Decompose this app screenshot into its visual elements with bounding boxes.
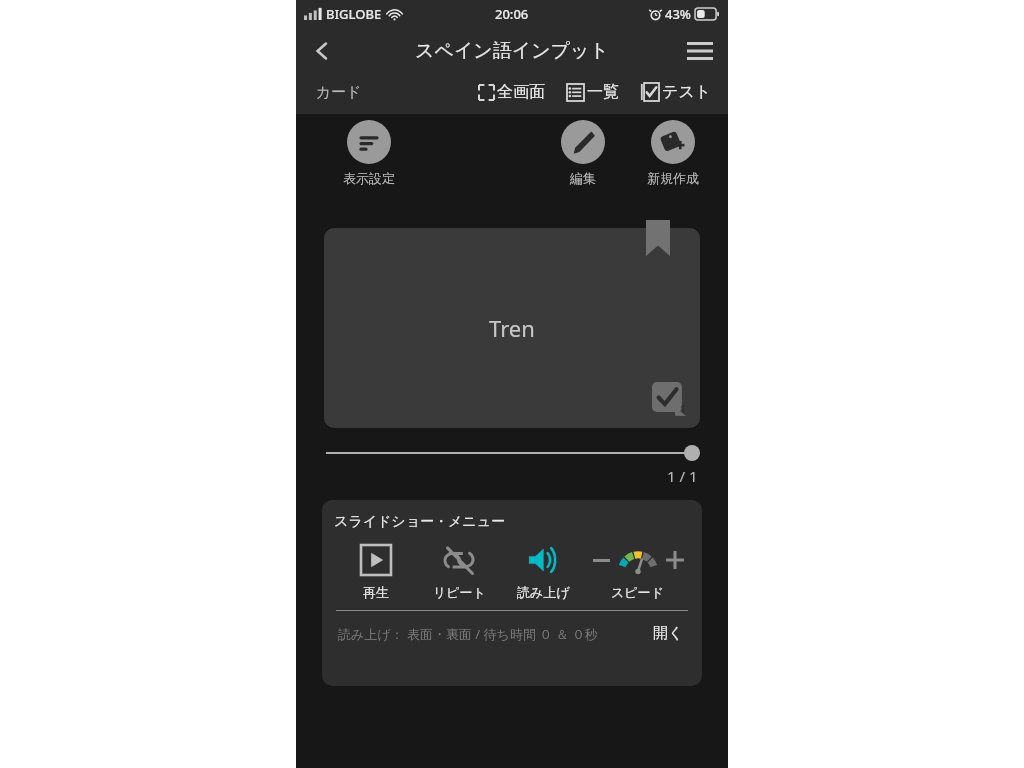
staticText: 読み上げ： 表面・裏面 / 待ち時間 ０ ＆ ０秒 <box>338 625 599 643</box>
button[interactable]: 一覧 <box>565 78 621 106</box>
staticText: Tren <box>489 313 535 343</box>
button[interactable]: 読み上げ <box>501 541 585 600</box>
button[interactable]: Bookmark <box>646 216 670 256</box>
staticText: スピード <box>611 584 664 600</box>
staticText: 43% <box>665 5 691 23</box>
staticText: 編集 <box>570 170 596 186</box>
staticText: スライドショー・メニュー <box>334 513 505 531</box>
button[interactable]: Decrease speed <box>590 549 612 571</box>
button[interactable]: カード <box>310 79 368 106</box>
staticText: 再生 <box>363 584 389 600</box>
button[interactable]: Menu <box>678 29 722 73</box>
button[interactable]: Increase speed <box>664 549 686 571</box>
staticText: 全画面 <box>497 82 545 102</box>
staticText: スペイン語インプット <box>415 39 610 63</box>
staticText: 1 / 1 <box>667 466 698 486</box>
staticText: 表示設定 <box>343 170 395 186</box>
staticText: 新規作成 <box>647 170 699 186</box>
button[interactable]: Speed gauge <box>615 543 661 577</box>
staticText: BIGLOBE <box>326 5 382 23</box>
staticText: リピート <box>433 584 486 600</box>
staticText: 読み上げ <box>517 584 570 600</box>
button[interactable]: 表示設定 <box>334 120 404 186</box>
button[interactable]: テスト <box>639 78 714 106</box>
button[interactable]: 全画面 <box>477 78 547 106</box>
staticText: 一覧 <box>587 82 619 102</box>
button[interactable]: Back <box>300 29 344 73</box>
staticText: 20:06 <box>495 5 529 23</box>
button[interactable]: Mark known <box>652 382 686 416</box>
button[interactable]: 再生 <box>334 541 417 600</box>
staticText: テスト <box>662 82 712 102</box>
button[interactable]: 新規作成 <box>638 120 708 186</box>
button[interactable]: 開く <box>647 622 690 645</box>
button[interactable]: 編集 <box>548 120 618 186</box>
staticText: 1 <box>680 402 686 416</box>
button[interactable] <box>324 444 700 462</box>
button[interactable]: リピート <box>417 541 501 600</box>
button[interactable]: Tren <box>324 228 700 428</box>
